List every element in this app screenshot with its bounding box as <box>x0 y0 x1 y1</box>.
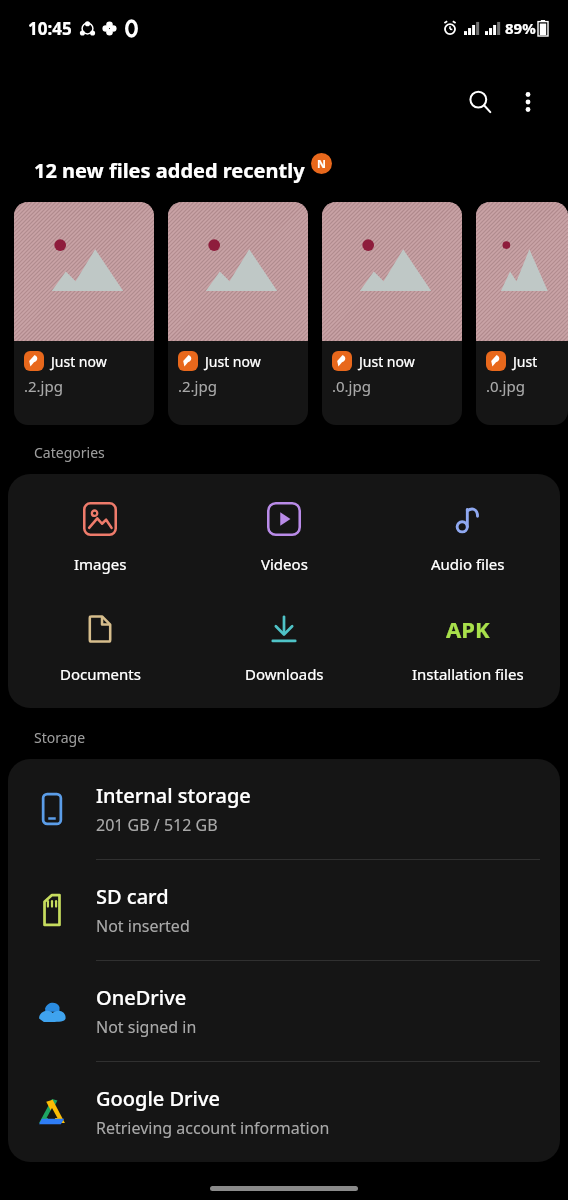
button[interactable]: Internal storage <box>8 759 560 859</box>
staticText: OneDrive <box>96 984 187 1011</box>
staticText: Videos <box>261 554 308 574</box>
staticText: 89% <box>505 18 536 38</box>
button[interactable]: Search <box>456 78 504 126</box>
staticText: .2.jpg <box>178 376 217 396</box>
staticText: 12 new files added recently <box>34 157 305 184</box>
staticText: Internal storage <box>96 782 251 809</box>
staticText: Retrieving account information <box>96 1117 330 1139</box>
button[interactable]: OneDrive <box>8 961 560 1061</box>
staticText: Google Drive <box>96 1085 220 1112</box>
button[interactable]: Google Drive <box>8 1062 560 1162</box>
staticText: Just now <box>51 352 107 371</box>
button[interactable]: Just now <box>14 202 154 425</box>
button[interactable]: SD card <box>8 860 560 960</box>
staticText: Categories <box>34 443 105 462</box>
button[interactable]: Audio files <box>376 494 560 578</box>
staticText: Audio files <box>431 554 505 574</box>
staticText: Not signed in <box>96 1016 197 1038</box>
staticText: Just now <box>359 352 415 371</box>
staticText: 201 GB / 512 GB <box>96 814 218 836</box>
staticText: Just now <box>205 352 261 371</box>
staticText: 10:45 <box>28 17 72 40</box>
button[interactable]: Images <box>8 494 192 578</box>
staticText: Images <box>74 554 127 574</box>
button[interactable]: Downloads <box>192 604 376 688</box>
staticText: .0.jpg <box>486 376 525 396</box>
staticText: Not inserted <box>96 915 190 937</box>
button[interactable]: More options <box>504 78 552 126</box>
staticText: Storage <box>34 728 86 747</box>
staticText: SD card <box>96 883 169 910</box>
button[interactable]: Documents <box>8 604 192 688</box>
staticText: .0.jpg <box>332 376 371 396</box>
button[interactable]: Just now <box>476 202 568 425</box>
staticText: Documents <box>60 664 141 684</box>
staticText: .2.jpg <box>24 376 63 396</box>
button[interactable]: APK <box>376 604 560 688</box>
staticText: Just now <box>513 352 568 371</box>
button[interactable]: Videos <box>192 494 376 578</box>
button[interactable]: Just now <box>168 202 308 425</box>
staticText: Installation files <box>412 664 524 684</box>
staticText: APK <box>446 614 490 644</box>
staticText: Downloads <box>245 664 324 684</box>
button[interactable]: Just now <box>322 202 462 425</box>
staticText: N <box>317 156 326 171</box>
